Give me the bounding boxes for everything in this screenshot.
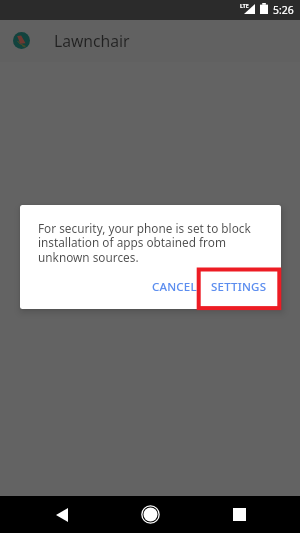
button[interactable]: Back [33,496,91,533]
staticText: For security, your phone is set to block… [38,220,262,266]
staticText: CANCEL [152,279,197,295]
staticText: 5:26 [273,3,294,17]
button[interactable]: CANCEL [146,272,202,302]
button[interactable]: Recents [209,496,267,533]
button[interactable]: Home [121,496,179,533]
staticText: Lawnchair [54,30,130,51]
staticText: LTE [240,3,249,10]
button[interactable]: SETTINGS [205,272,272,302]
staticText: SETTINGS [211,279,267,295]
